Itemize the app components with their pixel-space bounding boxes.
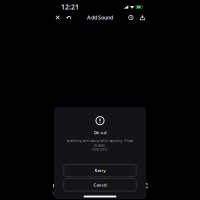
staticText: 12:21 bbox=[61, 3, 79, 11]
button[interactable]: Help bbox=[127, 13, 135, 22]
staticText: 00:14 bbox=[68, 191, 77, 196]
staticText: (PHP-005) bbox=[92, 148, 107, 152]
button[interactable]: Cancel bbox=[64, 179, 136, 191]
button[interactable]: Export bbox=[138, 13, 146, 22]
staticText: Add Sound bbox=[87, 14, 113, 21]
staticText: Cancel bbox=[93, 182, 106, 187]
staticText: 00:00 bbox=[52, 191, 61, 196]
button[interactable]: Undo bbox=[65, 13, 73, 22]
button[interactable]: Fullscreen bbox=[142, 183, 147, 188]
button[interactable]: Play bbox=[98, 183, 103, 188]
button[interactable]: Close bbox=[53, 13, 62, 22]
staticText: try again. bbox=[94, 144, 106, 147]
button[interactable]: Retry bbox=[64, 164, 136, 177]
staticText: Retry bbox=[94, 168, 105, 173]
staticText: Oh no! bbox=[93, 130, 106, 135]
button[interactable]: Loop bbox=[52, 183, 58, 188]
staticText: Something went wrong while exporting. Pl… bbox=[66, 139, 133, 143]
